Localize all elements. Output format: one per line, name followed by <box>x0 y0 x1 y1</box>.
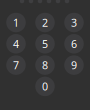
button[interactable]: 9 <box>64 55 84 75</box>
staticText: 9 <box>71 58 77 72</box>
button[interactable]: 4 <box>6 34 26 53</box>
button[interactable]: 0 <box>35 77 55 96</box>
staticText: 2 <box>42 15 48 30</box>
staticText: 4 <box>13 37 19 51</box>
staticText: 6 <box>71 37 77 51</box>
staticText: 0 <box>42 79 48 93</box>
staticText: 7 <box>13 58 19 72</box>
staticText: 3 <box>71 15 77 30</box>
button[interactable]: 5 <box>35 34 55 53</box>
button[interactable]: 1 <box>6 13 26 32</box>
button[interactable]: 8 <box>35 55 55 75</box>
button[interactable]: 7 <box>6 55 26 75</box>
button[interactable]: 6 <box>64 34 84 53</box>
button[interactable]: 3 <box>64 13 84 32</box>
staticText: 5 <box>42 37 48 51</box>
staticText: 1 <box>13 15 19 30</box>
staticText: 8 <box>42 58 48 72</box>
button[interactable]: 2 <box>35 13 55 32</box>
